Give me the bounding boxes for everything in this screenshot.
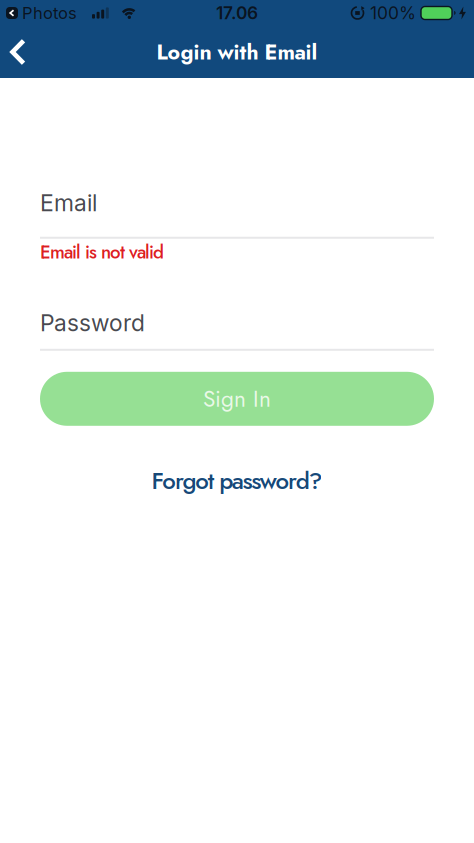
staticText: Photos: [22, 3, 77, 23]
staticText: Login with Email: [156, 37, 317, 67]
button[interactable]: Forgot password?: [152, 464, 322, 498]
button[interactable]: Photos: [0, 3, 77, 23]
button[interactable]: [0, 26, 26, 78]
button[interactable]: Sign In: [40, 372, 434, 426]
staticText: Email is not valid: [40, 239, 164, 265]
staticText: 17.06: [216, 2, 258, 23]
staticText: 100%: [370, 2, 416, 23]
staticText: Sign In: [203, 383, 271, 415]
staticText: Email: [40, 189, 97, 217]
staticText: Forgot password?: [152, 464, 322, 498]
staticText: Password: [40, 309, 145, 337]
